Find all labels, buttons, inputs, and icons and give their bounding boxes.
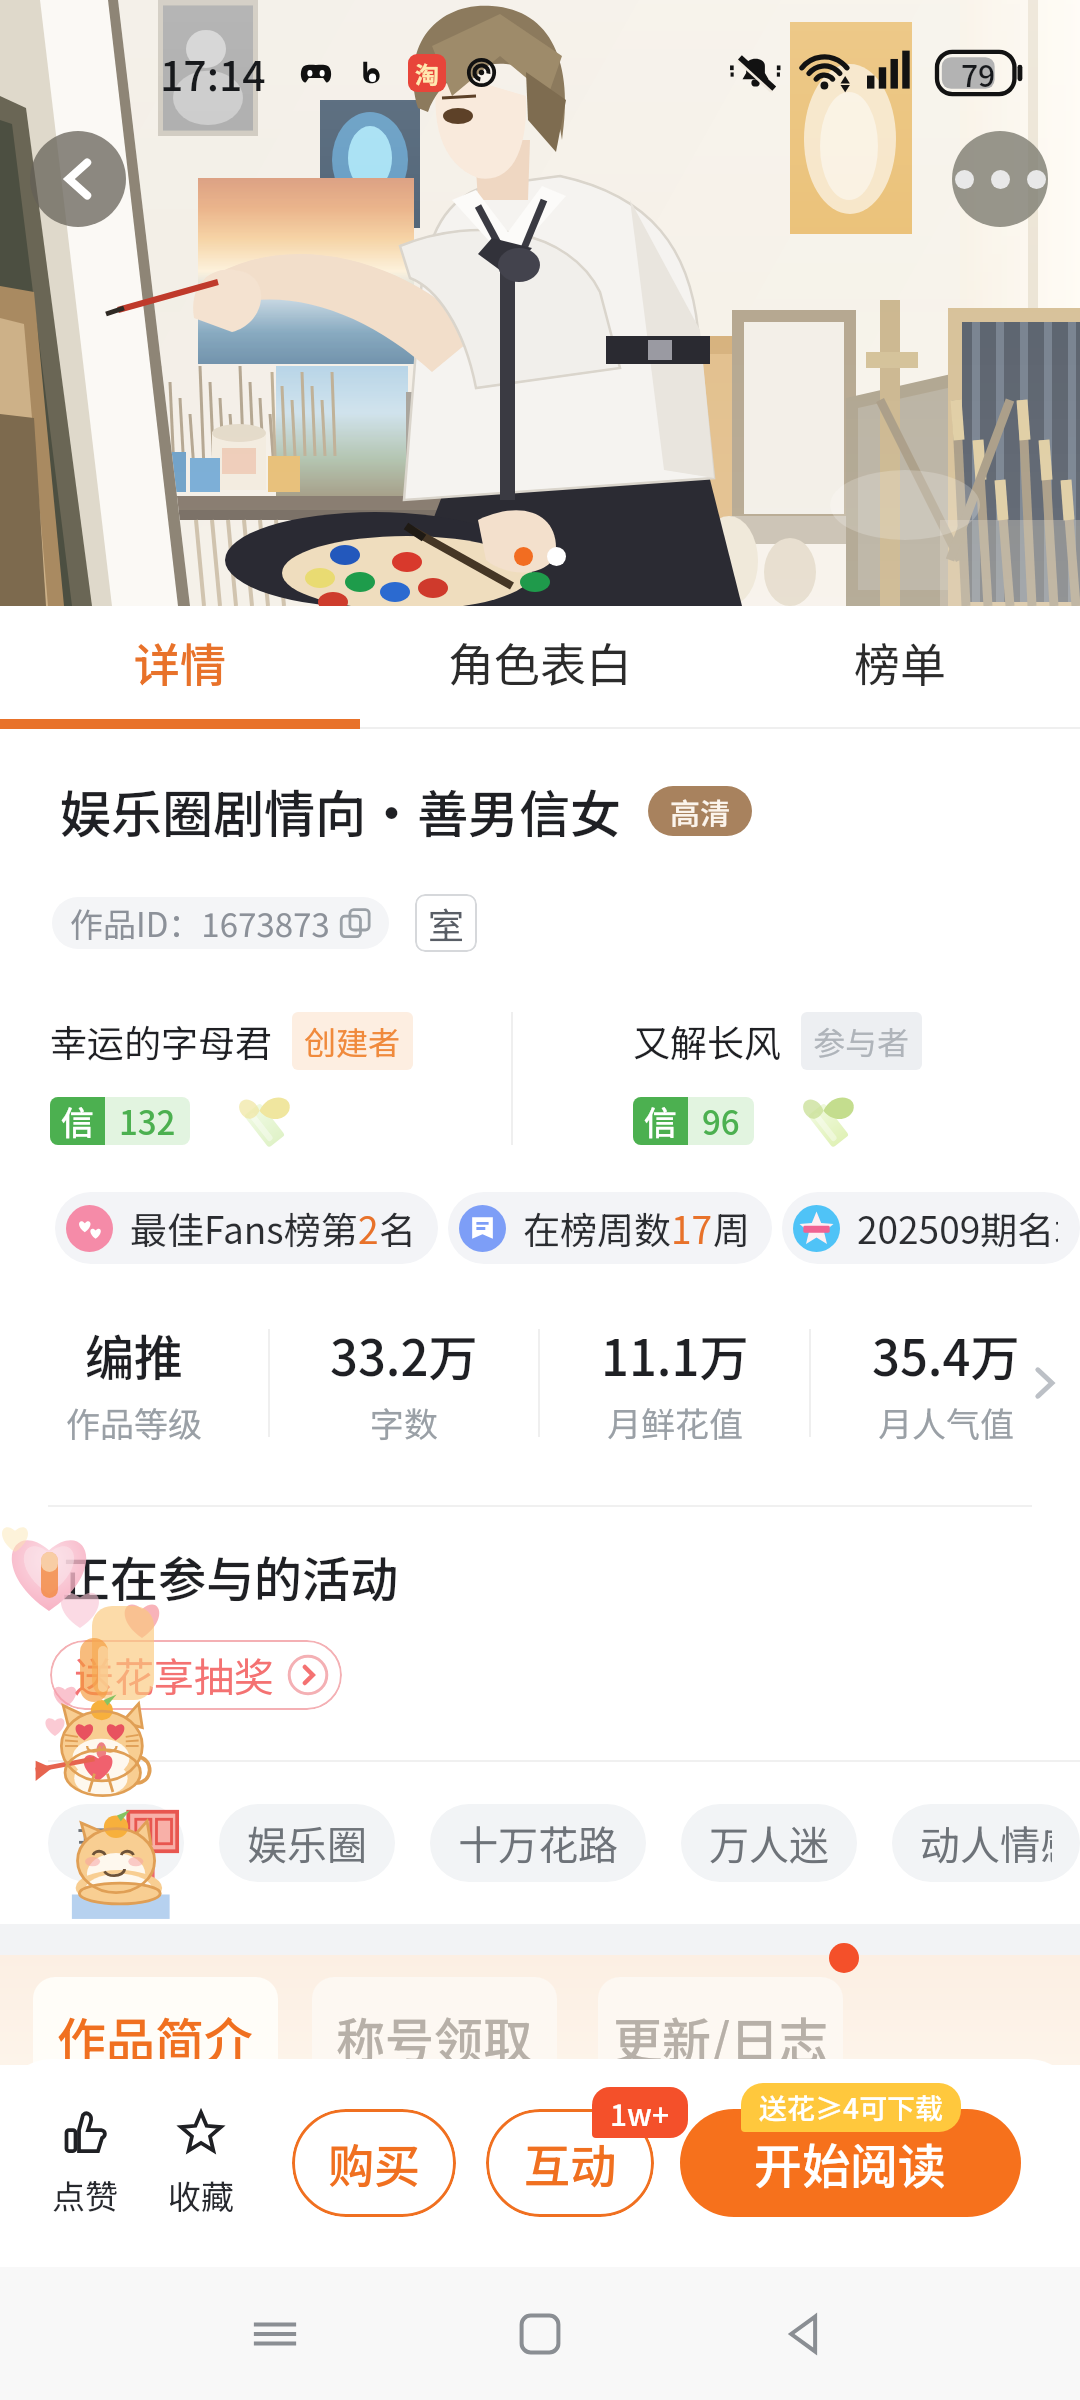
staticText: 33.2万 [330,1319,478,1390]
button[interactable]: 榜单 [720,606,1080,719]
staticText: 35.4万 [872,1319,1020,1390]
button[interactable]: 最佳Fans榜第 [55,1192,438,1264]
staticText: 更新/日志 [613,2002,829,2065]
staticText: 动人情感 [920,1814,1052,1872]
staticText: 月人气值 [878,1398,1014,1447]
button[interactable]: 互动 [486,2109,654,2217]
staticText: 96 [702,1097,740,1145]
staticText: 点赞 [52,2171,118,2219]
staticText: 室 [428,897,465,949]
button[interactable]: 详情 [0,606,360,719]
button[interactable]: 现代 [48,1804,184,1882]
button[interactable]: 收藏 [162,2107,240,2219]
staticText: 作品ID：1673873 [70,899,330,947]
staticText: 编推 [85,1319,184,1390]
staticText: 娱乐圈 [247,1814,367,1872]
staticText: 收藏 [168,2171,234,2219]
button[interactable]: 11.1万 [540,1319,809,1447]
staticText: 11.1万 [601,1319,749,1390]
button[interactable]: 万人迷 [681,1804,857,1882]
button[interactable]: Back [30,131,126,227]
staticText: 开始阅读 [754,2128,947,2198]
staticText: 最佳Fans榜第 [130,1201,358,1255]
button[interactable]: More stats [1016,1355,1072,1411]
button[interactable]: 娱乐圈 [219,1804,395,1882]
staticText: 称号领取 [336,2002,533,2065]
staticText: 互动 [524,2130,616,2197]
staticText: 送花≥4可下载 [759,2087,943,2128]
other: Image pager, page 1 of 2 [508,541,572,572]
staticText: 万人迷 [709,1814,829,1872]
staticText: 现代 [76,1814,156,1872]
staticText: 1w+ [610,2091,670,2134]
button[interactable]: 十万花路 [430,1804,646,1882]
staticText: 参与者 [813,1018,910,1064]
staticText: 132 [119,1097,176,1145]
staticText: 字数 [370,1398,438,1447]
button[interactable]: Recents [225,2284,325,2384]
button[interactable]: 点赞 [46,2107,124,2219]
staticText: 2 [358,1201,379,1255]
button[interactable]: Home [490,2284,590,2384]
staticText: 详情 [134,629,226,696]
button[interactable]: 在榜周数 [448,1192,772,1264]
button[interactable]: More options [952,131,1048,227]
staticText: 十万花路 [458,1814,618,1872]
staticText: 17 [671,1201,713,1255]
button[interactable]: 送花享抽奖 [50,1640,342,1710]
staticText: 正在参与的活动 [62,1541,399,1611]
staticText: 信 [61,1097,94,1145]
staticText: 月鲜花值 [607,1398,743,1447]
staticText: 作品等级 [66,1398,202,1447]
staticText: 17:14 [160,43,266,102]
staticText: 送花享抽奖 [74,1646,274,1704]
button[interactable]: Back [755,2284,855,2384]
button[interactable]: 35.4万 [811,1319,1080,1447]
button[interactable]: 作品ID：1673873 [52,897,389,949]
staticText: 淘 [415,56,439,91]
staticText: 高清 [670,790,730,833]
staticText: 名 [379,1201,416,1255]
button[interactable]: 角色表白 [360,606,720,719]
button[interactable]: 更新/日志 [598,1977,843,2065]
button[interactable]: 202509期名场 [782,1192,1080,1264]
staticText: 在榜周数 [523,1201,671,1255]
staticText: 榜单 [854,629,946,696]
staticText: 角色表白 [448,629,632,696]
staticText: 202509期名场 [857,1201,1058,1255]
staticText: 周 [713,1201,750,1255]
staticText: 79 [961,52,996,95]
staticText: 娱乐圈剧情向·善男信女 [60,774,622,848]
staticText: 信 [644,1097,677,1145]
staticText: 作品简介 [57,2002,254,2065]
button[interactable]: 购买 [292,2109,456,2217]
button[interactable]: 编推 [0,1319,268,1447]
staticText: 又解长风 [633,1014,781,1068]
button[interactable]: 称号领取 [312,1977,557,2065]
button[interactable]: 动人情感 [892,1804,1080,1882]
staticText: 幸运的字母君 [50,1014,272,1068]
button[interactable]: 33.2万 [270,1319,538,1447]
button[interactable]: 作品简介 [33,1977,278,2065]
button[interactable]: 室 [415,894,477,952]
staticText: 购买 [328,2130,420,2197]
button[interactable]: 开始阅读 [680,2109,1021,2217]
staticText: 创建者 [304,1018,401,1064]
